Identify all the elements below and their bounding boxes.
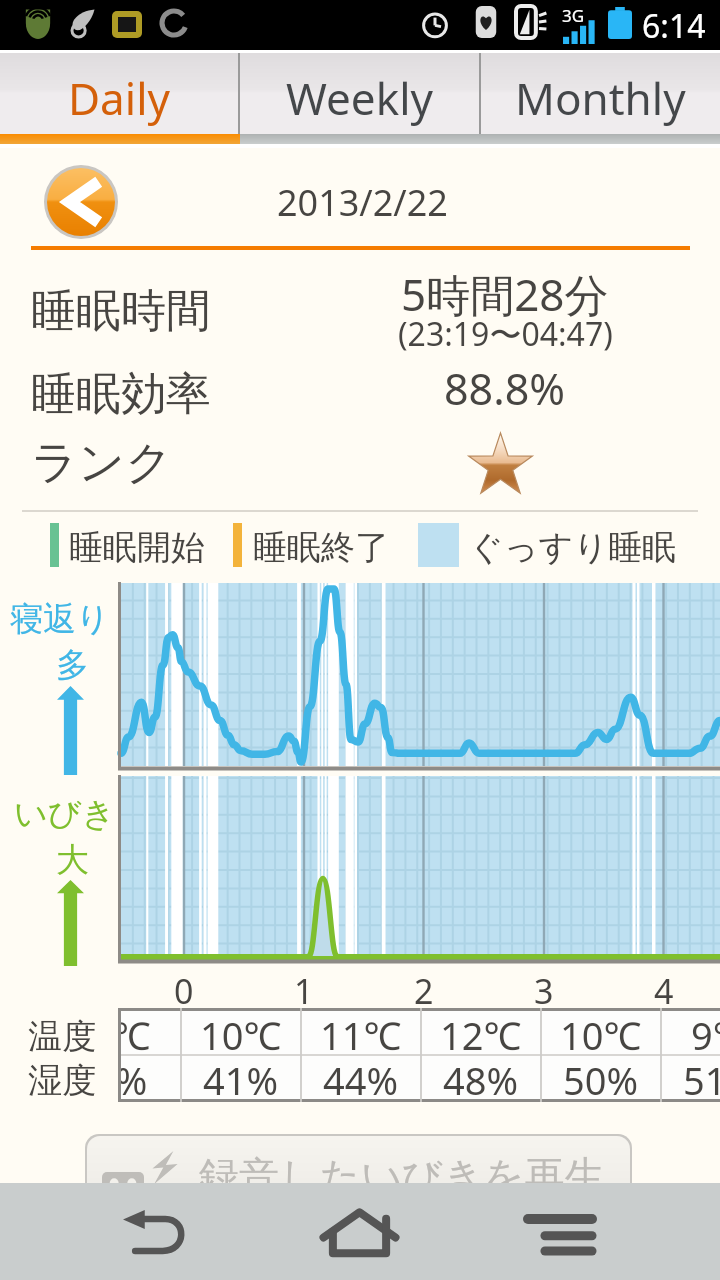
staticText: 8% [118,1054,148,1102]
staticText: 10℃ [560,1009,642,1061]
staticText: 48% [443,1054,519,1102]
button[interactable]: Home [300,1183,420,1280]
staticText: 多 [56,644,89,686]
staticText: 0 [174,968,194,1014]
staticText: 睡眠時間 [31,283,211,340]
staticText: Daily [68,68,170,128]
staticText: 3 [534,968,554,1014]
staticText: 44% [323,1054,399,1102]
staticText: 睡眠開始 [69,526,205,569]
staticText: 1 [294,968,314,1014]
staticText: ぐっすり睡眠 [469,526,677,569]
staticText: 寝返り [10,598,110,640]
staticText: 11℃ [320,1009,402,1061]
button[interactable]: Monthly [481,53,720,134]
staticText: 湿度 [28,1059,96,1102]
staticText: 51% [683,1054,720,1102]
staticText: 4 [654,968,674,1014]
button[interactable]: 録音したいびきを再生 [87,1136,630,1228]
staticText: (23:19〜04:47) [398,312,613,356]
staticText: 録音したいびきを再生 [199,1151,605,1201]
button[interactable]: Daily [0,53,238,134]
staticText: Weekly [286,68,433,128]
staticText: 2 [414,968,434,1014]
button[interactable]: Menu [500,1183,620,1280]
staticText: 88.8% [444,359,566,418]
button[interactable]: Previous day [47,168,115,236]
staticText: 6:14 [642,4,706,48]
staticText: 10℃ [200,1009,282,1061]
staticText: 睡眠効率 [31,366,211,423]
staticText: 温度 [28,1015,96,1058]
staticText: いびき [14,793,116,835]
staticText: 5℃ [118,1009,151,1061]
button[interactable]: Back [100,1183,220,1280]
staticText: 9℃ [691,1009,720,1061]
staticText: ランク [31,434,173,492]
staticText: 3G [562,4,585,27]
staticText: 41% [203,1054,279,1102]
staticText: Monthly [515,68,686,128]
staticText: 5時間28分 [401,264,609,324]
staticText: 大 [56,839,89,881]
staticText: 50% [563,1054,639,1102]
staticText: 2013/2/22 [277,178,448,227]
staticText: 睡眠終了 [253,526,389,569]
button[interactable]: Weekly [240,53,479,134]
staticText: 12℃ [440,1009,522,1061]
